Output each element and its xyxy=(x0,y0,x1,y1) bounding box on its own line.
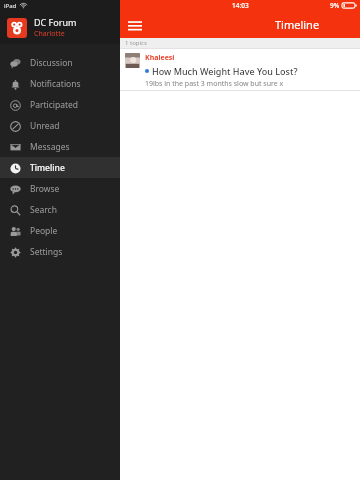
button[interactable]: Khaleesi xyxy=(120,49,360,90)
button[interactable]: Notifications xyxy=(0,73,120,94)
staticText: Messages xyxy=(30,141,70,153)
staticText: Timeline xyxy=(30,162,65,174)
staticText: Timeline xyxy=(275,17,320,32)
staticText: Notifications xyxy=(30,78,81,90)
button[interactable]: Open navigation menu xyxy=(125,15,145,35)
staticText: Search xyxy=(30,204,57,216)
staticText: 1 topics xyxy=(125,39,147,47)
staticText: 9% xyxy=(330,1,340,10)
staticText: People xyxy=(30,225,58,237)
button[interactable]: Messages xyxy=(0,136,120,157)
staticText: iPad xyxy=(4,2,17,10)
staticText: Settings xyxy=(30,246,63,258)
button[interactable]: Unread xyxy=(0,115,120,136)
staticText: DC Forum xyxy=(34,16,77,28)
staticText: Khaleesi xyxy=(145,53,175,63)
staticText: Unread xyxy=(30,120,60,132)
button[interactable]: People xyxy=(0,220,120,241)
staticText: How Much Weight Have You Lost? xyxy=(152,65,298,77)
button[interactable]: Discussion xyxy=(0,52,120,73)
button[interactable]: Settings xyxy=(0,241,120,262)
staticText: Charlotte xyxy=(34,29,65,39)
button[interactable]: Timeline xyxy=(0,157,120,178)
staticText: 14:03 xyxy=(232,1,249,10)
button[interactable]: DC Forum xyxy=(0,11,120,44)
button[interactable]: Browse xyxy=(0,178,120,199)
staticText: Browse xyxy=(30,183,60,195)
staticText: Participated xyxy=(30,99,79,111)
staticText: 19lbs in the past 3 months slow but sure… xyxy=(145,79,284,89)
button[interactable]: Search xyxy=(0,199,120,220)
staticText: Discussion xyxy=(30,57,73,69)
button[interactable]: Participated xyxy=(0,94,120,115)
